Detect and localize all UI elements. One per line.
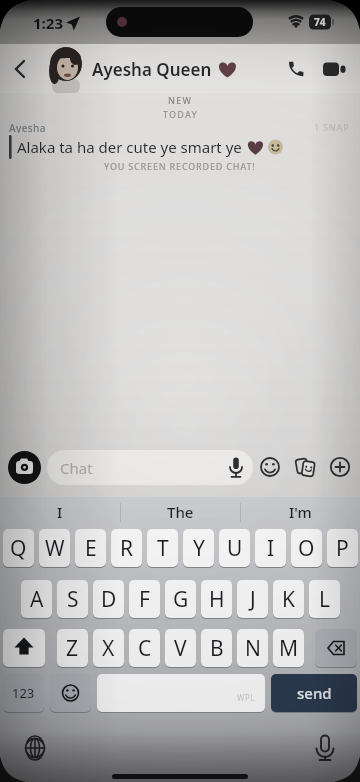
button[interactable]: M — [273, 629, 304, 667]
staticText: I'm — [289, 502, 312, 522]
staticText: 123 — [12, 684, 35, 702]
button[interactable] — [222, 452, 250, 482]
staticText: Z — [66, 634, 79, 663]
button[interactable] — [282, 55, 310, 83]
staticText: F — [139, 585, 150, 614]
button[interactable]: I — [255, 529, 286, 567]
button[interactable] — [318, 55, 348, 83]
button[interactable]: 123 — [3, 674, 44, 712]
button[interactable]: F — [129, 580, 160, 618]
staticText: O — [298, 534, 315, 563]
staticText: E — [85, 534, 97, 563]
button[interactable] — [20, 733, 50, 763]
staticText: 1 SNAP — [314, 121, 350, 133]
button[interactable]: B — [201, 629, 232, 667]
button[interactable]: Z — [57, 629, 88, 667]
button[interactable]: J — [237, 580, 268, 618]
button[interactable] — [3, 629, 45, 667]
staticText: NEW — [168, 94, 193, 105]
button[interactable]: Q — [3, 529, 34, 567]
staticText: R — [120, 534, 134, 563]
button[interactable]: I'm — [250, 499, 350, 525]
button[interactable]: G — [165, 580, 196, 618]
staticText: Ayesha Queen — [92, 58, 212, 81]
staticText: Chat — [60, 458, 93, 478]
button[interactable]: Ayesha Queen — [92, 55, 237, 83]
button[interactable] — [6, 55, 34, 83]
staticText: send — [297, 683, 332, 703]
staticText: K — [282, 585, 295, 614]
button[interactable] — [307, 733, 337, 763]
staticText: Q — [10, 534, 27, 563]
staticText: The — [167, 502, 194, 522]
staticText: G — [173, 585, 189, 614]
button[interactable]: S — [57, 580, 88, 618]
staticText: U — [227, 534, 243, 563]
staticText: TODAY — [163, 108, 198, 119]
button[interactable] — [47, 450, 253, 485]
button[interactable]: O — [291, 529, 322, 567]
button[interactable]: Y — [183, 529, 214, 567]
button[interactable]: E — [75, 529, 106, 567]
button[interactable]: R — [111, 529, 142, 567]
button[interactable]: The — [130, 499, 230, 525]
button[interactable]: L — [309, 580, 340, 618]
staticText: C — [138, 634, 152, 663]
button[interactable]: D — [93, 580, 124, 618]
button[interactable] — [97, 674, 265, 712]
staticText: A — [30, 585, 44, 614]
staticText: I — [267, 534, 275, 563]
staticText: 74 — [314, 15, 326, 29]
button[interactable]: send — [271, 674, 357, 712]
staticText: Ayesha — [9, 121, 46, 133]
button[interactable]: N — [237, 629, 268, 667]
staticText: I — [57, 502, 63, 522]
button[interactable] — [50, 674, 91, 712]
staticText: T — [157, 534, 169, 563]
button[interactable]: X — [93, 629, 124, 667]
staticText: X — [102, 634, 115, 663]
button[interactable]: H — [201, 580, 232, 618]
button[interactable]: K — [273, 580, 304, 618]
staticText: S — [67, 585, 79, 614]
button[interactable] — [326, 452, 354, 482]
button[interactable] — [256, 452, 284, 482]
button[interactable] — [290, 452, 320, 482]
staticText: Y — [193, 534, 205, 563]
staticText: B — [210, 634, 224, 663]
button[interactable]: A — [21, 580, 52, 618]
staticText: WPL — [237, 692, 255, 703]
button[interactable]: Alaka ta ha der cute ye smart ye — [17, 135, 284, 159]
button[interactable]: W — [39, 529, 70, 567]
button[interactable] — [315, 629, 357, 667]
staticText: W — [45, 534, 65, 563]
staticText: H — [209, 585, 225, 614]
staticText: N — [245, 634, 261, 663]
staticText: 1:23 — [33, 13, 63, 33]
staticText: D — [101, 585, 117, 614]
staticText: P — [336, 534, 349, 563]
staticText: M — [279, 634, 299, 663]
staticText: L — [319, 585, 331, 614]
button[interactable]: I — [10, 499, 110, 525]
staticText: V — [174, 634, 187, 663]
staticText: Alaka ta ha der cute ye smart ye — [17, 137, 242, 157]
button[interactable]: P — [327, 529, 358, 567]
button[interactable]: T — [147, 529, 178, 567]
button[interactable]: U — [219, 529, 250, 567]
staticText: J — [250, 585, 256, 614]
button[interactable] — [8, 451, 41, 484]
staticText: YOU SCREEN RECORDED CHAT! — [104, 160, 256, 172]
button[interactable]: V — [165, 629, 196, 667]
button[interactable]: C — [129, 629, 160, 667]
